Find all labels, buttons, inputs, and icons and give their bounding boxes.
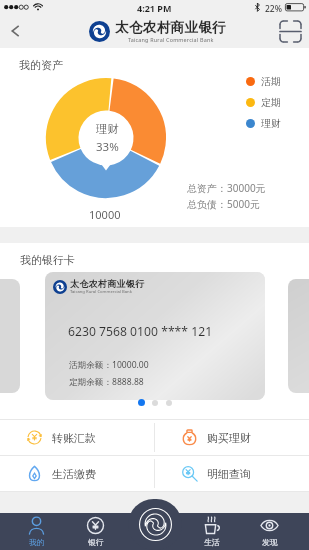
staticText: 22% — [265, 3, 282, 15]
button[interactable]: 明细查询 — [155, 456, 309, 491]
staticText: 我的银行卡 — [20, 253, 75, 267]
staticText: 理财 — [96, 122, 119, 136]
staticText: 太仓农村商业银行 — [70, 278, 145, 289]
button[interactable]: 我的 — [17, 516, 56, 549]
staticText: 4:21 PM — [137, 2, 172, 14]
staticText: 购买理财 — [207, 431, 251, 445]
staticText: 定期余额：8888.88 — [69, 376, 144, 388]
button[interactable]: 生活缴费 — [0, 456, 154, 491]
staticText: 33% — [96, 139, 119, 155]
staticText: 太仓农村商业银行 — [115, 19, 227, 36]
staticText: Taicang Rural Commercial Bank — [70, 289, 132, 295]
staticText: 明细查询 — [207, 467, 251, 481]
staticText: 6230 7568 0100 **** 121 — [68, 323, 213, 340]
staticText: 活期 — [261, 75, 281, 88]
button[interactable]: 生活 — [192, 516, 231, 549]
staticText: 生活 — [204, 537, 220, 547]
staticText: 转账汇款 — [52, 431, 96, 445]
button[interactable]: Scan QR code — [275, 16, 305, 46]
button[interactable]: 转账汇款 — [0, 420, 154, 455]
staticText: 银行 — [88, 537, 104, 547]
staticText: 活期余额：10000.00 — [69, 359, 149, 371]
button[interactable]: 银行 — [76, 516, 115, 549]
staticText: Taicang Rural Commercial Bank — [128, 36, 214, 43]
staticText: 定期 — [261, 96, 281, 109]
staticText: 10000 — [89, 207, 121, 222]
button[interactable]: Home — [128, 499, 182, 550]
button[interactable]: 发现 — [250, 516, 289, 549]
staticText: 理财 — [261, 117, 281, 130]
staticText: 总负债：5000元 — [187, 197, 260, 211]
staticText: 发现 — [262, 537, 278, 547]
button[interactable] — [288, 279, 309, 393]
staticText: 总资产：30000元 — [187, 181, 266, 195]
staticText: 我的 — [29, 537, 45, 547]
button[interactable]: 购买理财 — [155, 420, 309, 455]
staticText: 我的资产 — [19, 58, 63, 72]
button[interactable]: Back — [0, 16, 30, 46]
staticText: 生活缴费 — [52, 467, 96, 481]
button[interactable]: 太仓农村商业银行 — [45, 272, 265, 400]
